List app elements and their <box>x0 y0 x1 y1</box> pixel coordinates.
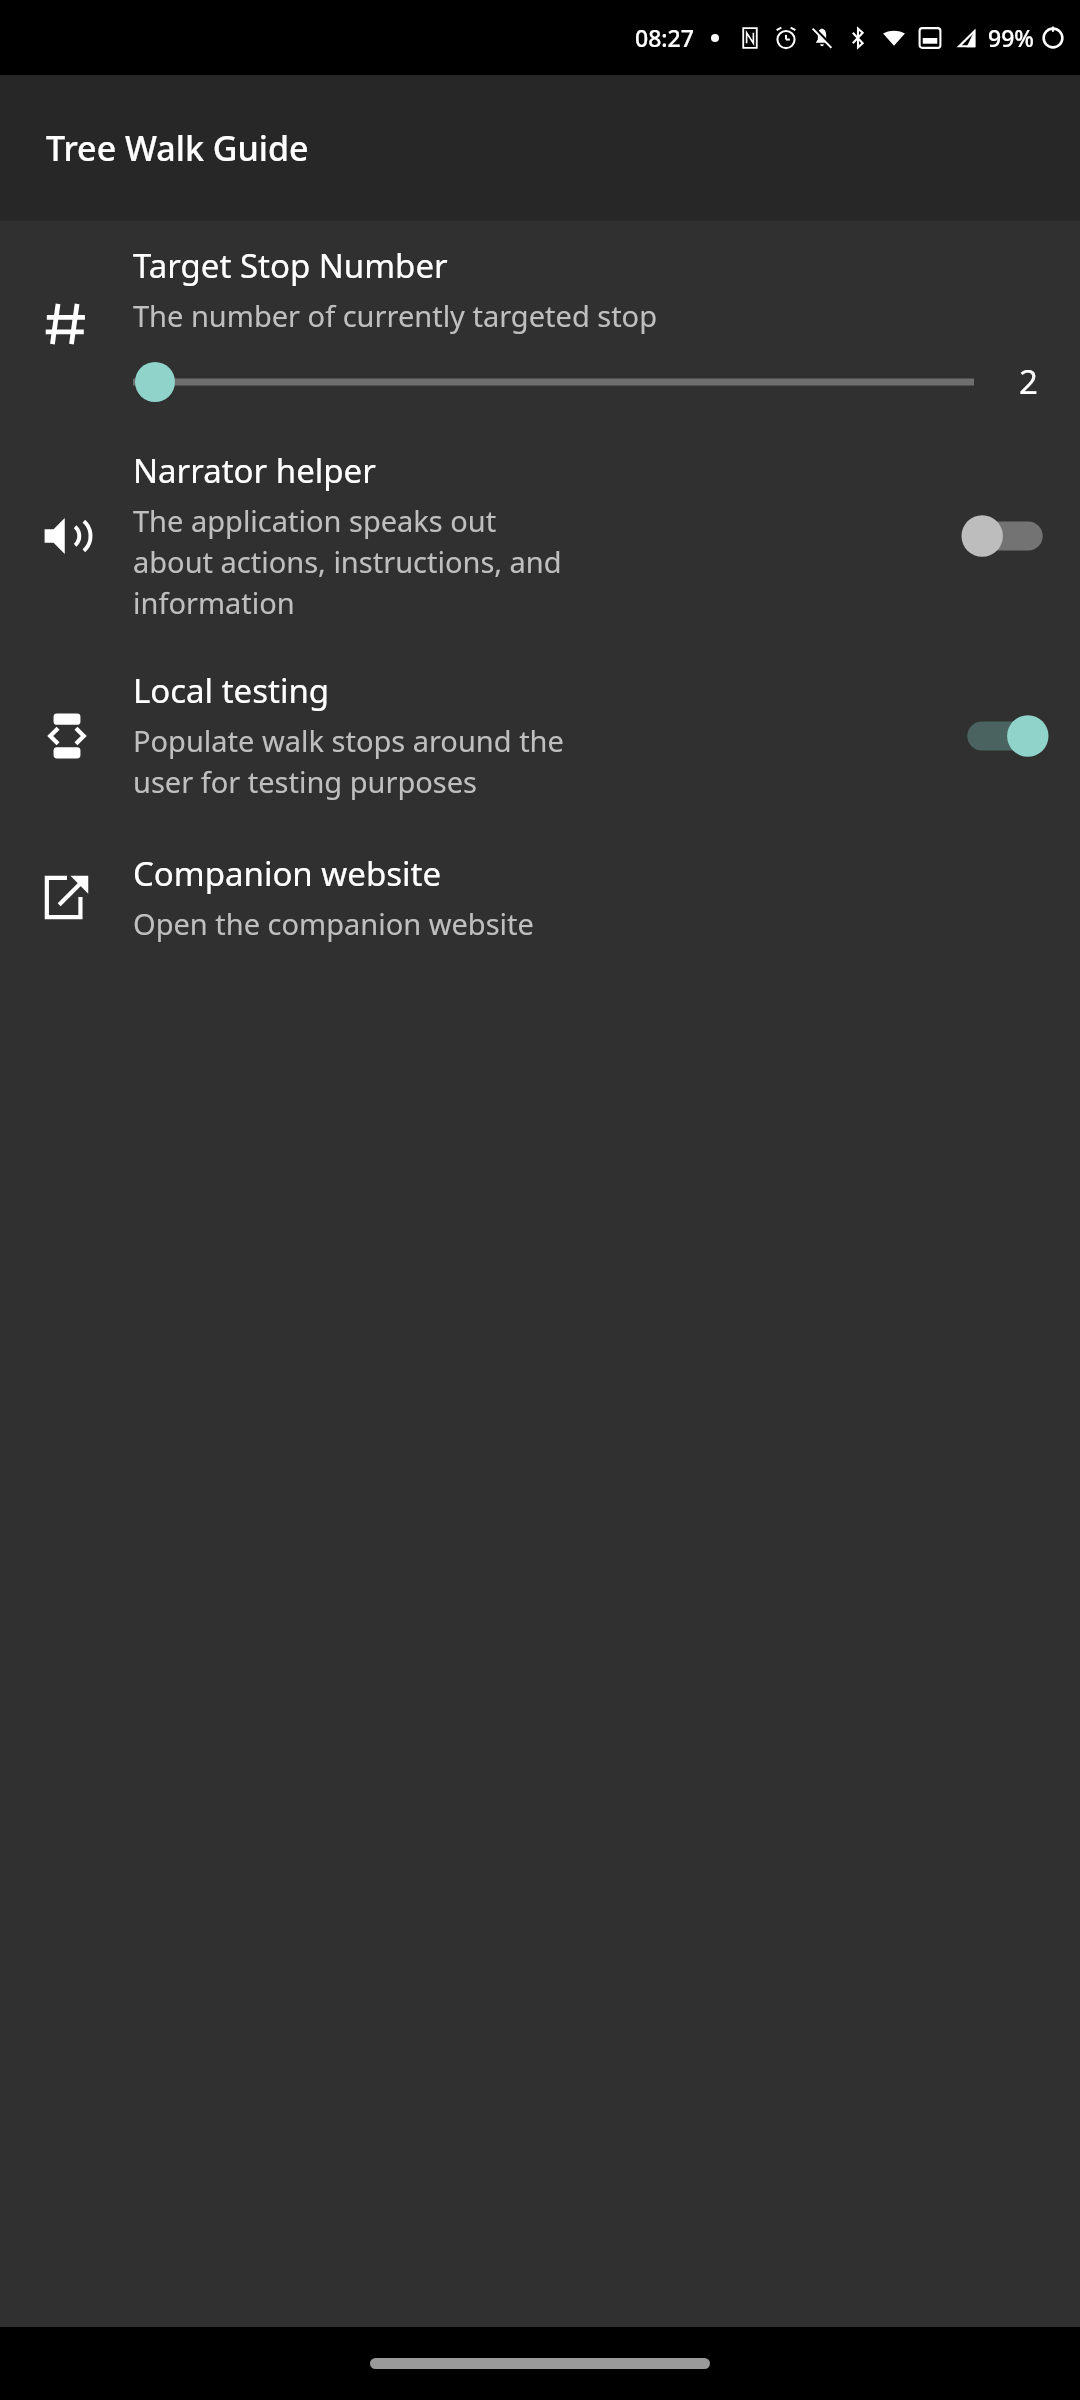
staticText: 2 <box>1019 359 1038 404</box>
staticText: about actions, instructions, and <box>133 542 562 581</box>
staticText: The number of currently targeted stop <box>133 296 658 335</box>
staticText: 99% <box>988 22 1034 53</box>
staticText: The application speaks out <box>133 501 497 540</box>
button[interactable]: Narrator helper <box>0 426 1080 646</box>
staticText: 08:27 <box>635 22 694 53</box>
staticText: Open the companion website <box>133 904 534 943</box>
staticText: Companion website <box>133 851 442 896</box>
staticText: information <box>133 583 295 622</box>
staticText: Tree Walk Guide <box>46 125 309 171</box>
button[interactable]: Target Stop Number <box>0 221 1080 426</box>
button[interactable]: Local testing <box>0 646 1080 825</box>
staticText: Local testing <box>133 668 330 713</box>
staticText: Target Stop Number <box>133 243 448 288</box>
staticText: Populate walk stops around the <box>133 721 564 760</box>
staticText: user for testing purposes <box>133 762 477 801</box>
staticText: Narrator helper <box>133 448 376 493</box>
button[interactable]: Toggle off <box>930 508 1080 564</box>
button[interactable]: Companion website <box>0 825 1080 969</box>
button[interactable]: Toggle on <box>930 708 1080 764</box>
